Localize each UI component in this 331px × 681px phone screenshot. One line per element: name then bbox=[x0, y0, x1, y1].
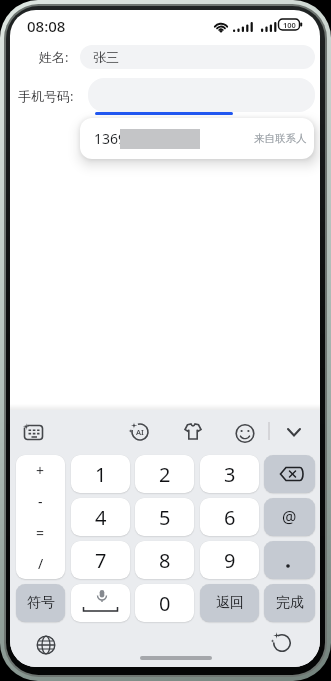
button[interactable] bbox=[140, 656, 212, 660]
staticText: 6 bbox=[224, 504, 236, 531]
button[interactable]: 4 bbox=[71, 498, 130, 536]
button[interactable] bbox=[264, 455, 315, 493]
staticText: 08:08 bbox=[27, 16, 66, 36]
staticText: AI bbox=[136, 427, 144, 437]
button[interactable]: 1369 bbox=[80, 118, 314, 159]
staticText: 1 bbox=[95, 461, 107, 488]
staticText: = bbox=[36, 523, 45, 542]
button[interactable]: 9 bbox=[200, 541, 259, 579]
button[interactable]: 1 bbox=[71, 455, 130, 493]
staticText: 手机号码: bbox=[18, 87, 74, 105]
staticText: 来自联系人 bbox=[254, 132, 307, 145]
button[interactable]: 符号 bbox=[16, 584, 65, 622]
button[interactable]: 0 bbox=[135, 584, 194, 622]
button[interactable] bbox=[71, 584, 130, 622]
staticText: + bbox=[36, 461, 45, 480]
button[interactable] bbox=[22, 420, 58, 454]
button[interactable]: 返回 bbox=[200, 584, 259, 622]
staticText: - bbox=[38, 492, 43, 511]
staticText: 5 bbox=[159, 504, 171, 531]
staticText: 100 bbox=[283, 20, 296, 30]
staticText: / bbox=[38, 554, 44, 573]
button[interactable] bbox=[268, 629, 296, 657]
button[interactable]: 5 bbox=[135, 498, 194, 536]
staticText: 8 bbox=[159, 547, 171, 574]
button[interactable]: 2 bbox=[135, 455, 194, 493]
button[interactable] bbox=[282, 420, 312, 454]
staticText: 4 bbox=[95, 504, 107, 531]
button[interactable]: 张三 bbox=[80, 45, 315, 69]
staticText: 完成 bbox=[276, 594, 304, 612]
staticText: 3 bbox=[224, 461, 236, 488]
button[interactable]: + bbox=[16, 455, 65, 579]
staticText: 张三 bbox=[93, 49, 119, 65]
button[interactable] bbox=[130, 420, 166, 454]
button[interactable]: 完成 bbox=[264, 584, 315, 622]
button[interactable]: 3 bbox=[200, 455, 259, 493]
button[interactable] bbox=[180, 420, 216, 454]
button[interactable]: @ bbox=[264, 498, 315, 536]
staticText: @ bbox=[282, 506, 297, 528]
button[interactable] bbox=[264, 541, 315, 579]
staticText: 1369 bbox=[94, 129, 127, 148]
staticText: 姓名: bbox=[39, 48, 69, 66]
staticText: 返回 bbox=[216, 594, 244, 612]
button[interactable]: 8 bbox=[135, 541, 194, 579]
button[interactable] bbox=[234, 420, 270, 454]
staticText: 7 bbox=[95, 547, 107, 574]
staticText: 0 bbox=[159, 590, 171, 617]
button[interactable] bbox=[32, 631, 60, 659]
button[interactable]: 7 bbox=[71, 541, 130, 579]
staticText: 符号 bbox=[27, 594, 55, 612]
button[interactable]: 6 bbox=[200, 498, 259, 536]
staticText: 2 bbox=[159, 461, 171, 488]
staticText: 9 bbox=[224, 547, 236, 574]
